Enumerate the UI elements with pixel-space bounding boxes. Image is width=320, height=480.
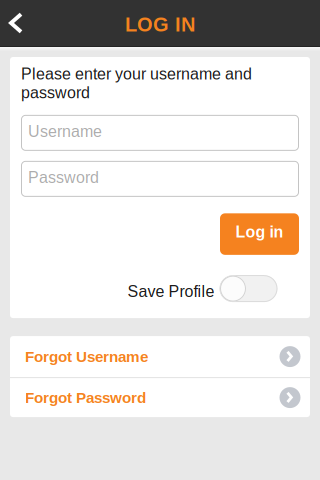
button[interactable]: Back xyxy=(0,0,39,47)
staticText: Forgot Username xyxy=(25,348,148,365)
staticText: Please enter your username and password xyxy=(21,65,252,102)
staticText: Forgot Password xyxy=(25,389,146,406)
staticText: Password xyxy=(28,168,99,186)
staticText: Log in xyxy=(235,223,283,241)
staticText: Save Profile xyxy=(127,282,214,300)
button[interactable]: Forgot Username xyxy=(10,336,310,377)
staticText: Username xyxy=(28,122,102,140)
button[interactable]: Save Profile xyxy=(219,275,277,302)
staticText: LOG IN xyxy=(125,13,195,36)
button[interactable]: Password xyxy=(21,161,299,197)
button[interactable]: Log in xyxy=(220,213,299,255)
button[interactable]: Username xyxy=(21,115,299,151)
button[interactable]: Forgot Password xyxy=(10,378,310,417)
